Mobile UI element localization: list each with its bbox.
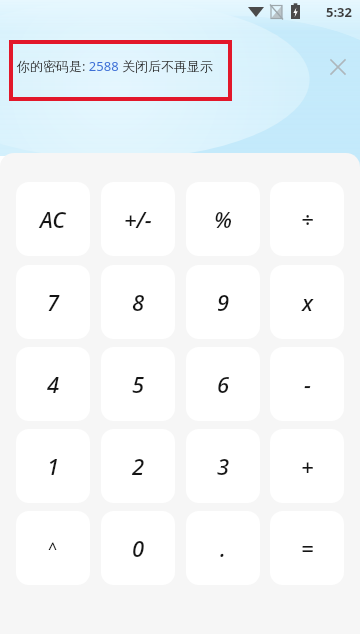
button[interactable]: + bbox=[270, 429, 344, 503]
staticText: 6 bbox=[217, 369, 230, 399]
staticText: % bbox=[214, 204, 232, 234]
button[interactable]: 7 bbox=[16, 265, 90, 339]
staticText: + bbox=[301, 451, 314, 481]
staticText: − bbox=[304, 369, 311, 399]
button[interactable]: 6 bbox=[186, 347, 260, 421]
button[interactable]: 1 bbox=[16, 429, 90, 503]
staticText: 8 bbox=[132, 287, 145, 317]
button[interactable]: 8 bbox=[101, 265, 175, 339]
button[interactable]: % bbox=[186, 182, 260, 256]
button[interactable]: 5 bbox=[101, 347, 175, 421]
staticText: x bbox=[302, 287, 313, 317]
staticText: 1 bbox=[47, 451, 60, 481]
button[interactable]: +/− bbox=[101, 182, 175, 256]
button[interactable]: ^ bbox=[16, 511, 90, 585]
staticText: . bbox=[220, 533, 226, 563]
button[interactable]: 0 bbox=[101, 511, 175, 585]
button[interactable]: . bbox=[186, 511, 260, 585]
staticText: ÷ bbox=[301, 204, 314, 234]
staticText: 你的密码是: 2588 关闭后不再显示 bbox=[17, 57, 213, 75]
button[interactable]: AC bbox=[16, 182, 90, 256]
staticText: 3 bbox=[217, 451, 230, 481]
staticText: 0 bbox=[132, 533, 145, 563]
staticText: ^ bbox=[48, 537, 58, 559]
button[interactable]: Close bbox=[321, 50, 355, 84]
button[interactable]: = bbox=[270, 511, 344, 585]
staticText: +/− bbox=[124, 204, 152, 234]
staticText: 4 bbox=[47, 369, 60, 399]
staticText: 9 bbox=[217, 287, 230, 317]
staticText: = bbox=[301, 533, 314, 563]
button[interactable]: 3 bbox=[186, 429, 260, 503]
button[interactable]: − bbox=[270, 347, 344, 421]
staticText: AC bbox=[40, 204, 66, 234]
button[interactable]: 4 bbox=[16, 347, 90, 421]
button[interactable]: ÷ bbox=[270, 182, 344, 256]
button[interactable]: 2 bbox=[101, 429, 175, 503]
button[interactable]: 9 bbox=[186, 265, 260, 339]
button[interactable]: x bbox=[270, 265, 344, 339]
staticText: 5:32 bbox=[326, 3, 352, 21]
staticText: 7 bbox=[47, 287, 60, 317]
staticText: 5 bbox=[132, 369, 145, 399]
staticText: 2 bbox=[132, 451, 145, 481]
